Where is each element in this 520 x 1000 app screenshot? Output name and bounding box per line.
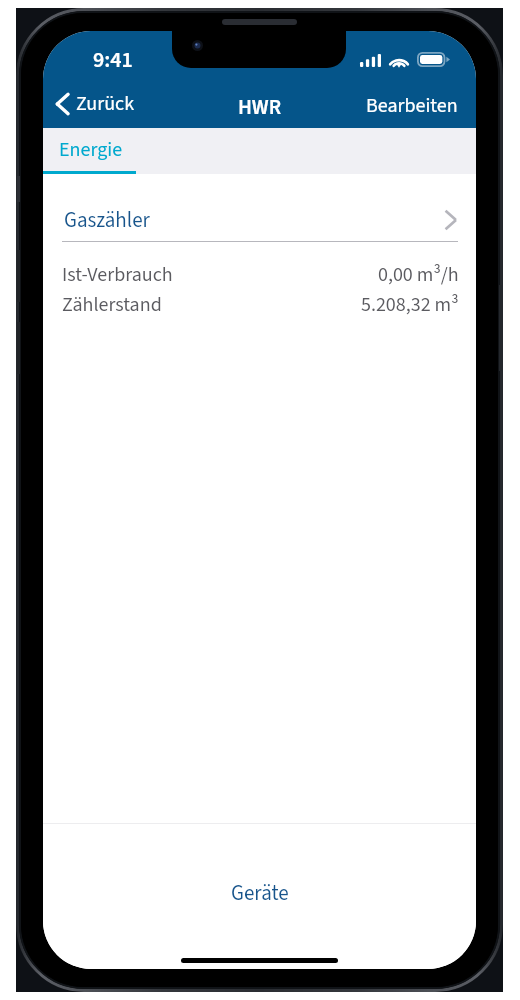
staticText: Geräte [231, 878, 289, 908]
staticText: HWR [43, 92, 476, 122]
staticText: Zählerstand [62, 291, 162, 316]
other: Status [360, 52, 450, 67]
staticText: Energie [59, 136, 123, 164]
staticText: Gaszähler [64, 205, 150, 235]
button[interactable]: Gaszähler [43, 198, 476, 241]
staticText: 9:41 [93, 44, 133, 75]
button[interactable]: Geräte [213, 871, 307, 915]
button[interactable]: Zurück [51, 83, 140, 125]
staticText: 0,00 m³/h [378, 261, 459, 286]
button[interactable]: Energie [43, 128, 138, 171]
staticText: 5.208,32 m³ [361, 291, 459, 316]
staticText: Ist-Verbrauch [62, 261, 173, 286]
staticText: Zurück [76, 90, 135, 118]
button[interactable]: Bearbeiten [348, 85, 476, 127]
